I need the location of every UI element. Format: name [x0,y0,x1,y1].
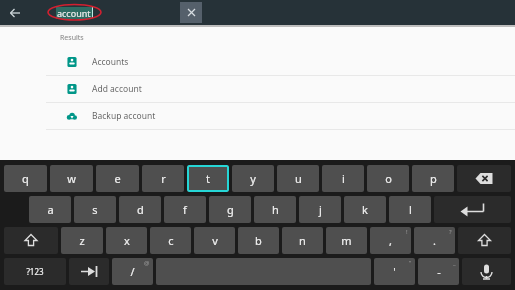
button[interactable]: o [367,165,409,192]
button[interactable]: Back [0,0,30,25]
staticText: , [389,233,392,248]
staticText: - [437,264,441,279]
button[interactable]: Add account [0,76,515,102]
button[interactable]: b [238,227,279,254]
staticText: g [227,202,234,217]
staticText: x [124,233,130,248]
staticText: ? [449,228,452,236]
staticText: ! [406,228,408,236]
staticText: @ [144,259,150,267]
staticText: e [114,171,121,186]
button[interactable]: d [119,196,161,223]
button[interactable]: ?123 [4,258,66,285]
button[interactable]: Backspace [457,165,511,192]
staticText: c [168,233,174,248]
staticText: Results [60,33,84,43]
button[interactable]: m [326,227,367,254]
button[interactable]: f [164,196,206,223]
button[interactable]: Shift [458,227,511,254]
button[interactable]: Enter [434,196,511,223]
button[interactable]: w [50,165,93,192]
staticText: ' [393,264,396,279]
staticText: _ [453,259,456,267]
button[interactable]: x [106,227,147,254]
staticText: l [409,202,412,217]
button[interactable]: Voice input [462,258,511,285]
button[interactable]: h [254,196,296,223]
staticText: j [319,202,322,217]
button[interactable]: i [322,165,364,192]
button[interactable]: t [187,165,229,192]
button[interactable]: q [4,165,47,192]
button[interactable]: u [277,165,319,192]
staticText: u [295,171,302,186]
staticText: Backup account [92,110,156,122]
staticText: y [250,171,256,186]
staticText: z [79,233,85,248]
staticText: d [137,202,144,217]
button[interactable]: p [412,165,454,192]
staticText: i [342,171,345,186]
button[interactable]: g [209,196,251,223]
button[interactable]: Clear [180,2,202,23]
staticText: p [430,171,437,186]
staticText: t [206,171,210,186]
button[interactable]: r [142,165,184,192]
staticText: w [67,171,76,186]
button[interactable]: s [74,196,116,223]
button[interactable]: Tab [69,258,109,285]
button[interactable]: ' [374,258,415,285]
staticText: . [433,233,436,248]
staticText: a [47,202,54,217]
button[interactable]: Accounts [0,49,515,75]
button[interactable]: Backup account [0,103,515,129]
button[interactable]: - [418,258,459,285]
staticText: k [362,202,368,217]
staticText: q [22,171,29,186]
button[interactable]: z [61,227,103,254]
button[interactable]: a [29,196,71,223]
button[interactable]: Shift [4,227,58,254]
staticText: s [92,202,98,217]
staticText: Accounts [92,56,129,68]
staticText: Add account [92,83,142,95]
staticText: " [409,259,412,267]
staticText: v [212,233,218,248]
button[interactable]: . [414,227,455,254]
button[interactable]: n [282,227,323,254]
button[interactable]: / [112,258,153,285]
button[interactable]: j [299,196,341,223]
staticText: / [130,264,135,279]
staticText: n [299,233,306,248]
button[interactable]: k [344,196,386,223]
staticText: o [385,171,392,186]
button[interactable]: account [56,0,136,25]
staticText: m [341,233,352,248]
staticText: account [57,7,91,19]
button[interactable]: c [150,227,191,254]
staticText: r [161,171,166,186]
button[interactable]: v [194,227,235,254]
button[interactable]: , [370,227,411,254]
button[interactable]: y [232,165,274,192]
button[interactable]: e [96,165,139,192]
staticText: f [183,202,187,217]
button[interactable]: l [389,196,431,223]
staticText: h [272,202,279,217]
staticText: ?123 [26,266,44,277]
staticText: b [255,233,262,248]
